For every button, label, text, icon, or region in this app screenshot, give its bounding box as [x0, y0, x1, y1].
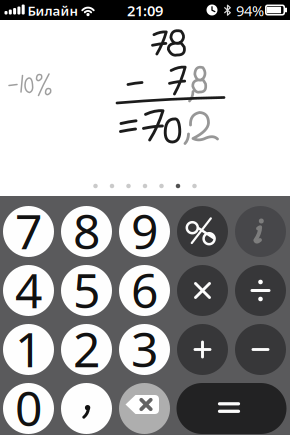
- button[interactable]: Multiply: [177, 265, 228, 316]
- staticText: 94%: [236, 1, 264, 20]
- button[interactable]: 3: [119, 324, 170, 375]
- button[interactable]: Percent: [177, 206, 228, 257]
- staticText: 0: [15, 376, 42, 435]
- button[interactable]: 6: [119, 265, 170, 316]
- button[interactable]: Divide: [235, 265, 286, 316]
- staticText: 8: [73, 199, 100, 262]
- button[interactable]: 2: [61, 324, 112, 375]
- button[interactable]: 1: [3, 324, 54, 375]
- button[interactable]: 9: [119, 206, 170, 257]
- staticText: 2: [73, 317, 100, 380]
- button[interactable]: Comma: [61, 383, 112, 434]
- button[interactable]: 7: [3, 206, 54, 257]
- staticText: 3: [131, 317, 158, 380]
- button[interactable]: Info: [235, 206, 286, 257]
- staticText: 5: [73, 258, 100, 321]
- staticText: 21:09: [127, 1, 163, 20]
- staticText: 6: [131, 258, 158, 321]
- button[interactable]: Equals: [176, 383, 286, 434]
- button[interactable]: Delete: [119, 383, 170, 434]
- button[interactable]: Plus: [177, 324, 228, 375]
- button[interactable]: 4: [3, 265, 54, 316]
- staticText: 7: [15, 199, 42, 262]
- button[interactable]: 8: [61, 206, 112, 257]
- staticText: 9: [131, 199, 158, 262]
- button[interactable]: Minus: [235, 324, 286, 375]
- staticText: 4: [15, 258, 42, 321]
- staticText: 1: [15, 317, 42, 380]
- button[interactable]: 5: [61, 265, 112, 316]
- staticText: Билайн: [27, 2, 78, 19]
- button[interactable]: 0: [3, 383, 54, 434]
